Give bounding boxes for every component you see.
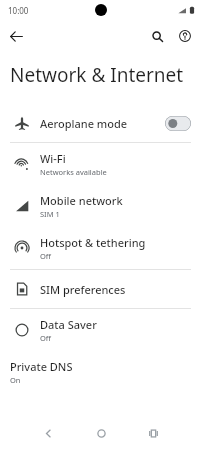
button[interactable]: Aeroplane mode toggle (165, 116, 191, 131)
button[interactable]: Wi-Fi (0, 143, 201, 185)
button[interactable]: Recent apps (127, 419, 179, 447)
button[interactable]: SIM preferences (0, 270, 201, 308)
button[interactable]: Private DNS (0, 351, 201, 393)
button[interactable]: Data Saver (0, 309, 201, 351)
button[interactable]: Home (75, 419, 127, 447)
staticText: Hotspot & tethering (40, 235, 146, 250)
staticText: SIM preferences (40, 282, 126, 297)
staticText: Network & Internet (10, 62, 184, 88)
button[interactable]: Search (146, 25, 168, 47)
staticText: Networks available (40, 167, 107, 177)
staticText: On (10, 375, 21, 385)
staticText: Aeroplane mode (40, 116, 128, 131)
staticText: 10:00 (8, 5, 29, 16)
button[interactable]: Mobile network (0, 185, 201, 227)
staticText: Data Saver (40, 317, 97, 332)
button[interactable]: Hotspot & tethering (0, 227, 201, 269)
button[interactable]: Back (5, 25, 27, 47)
staticText: Off (40, 251, 52, 261)
staticText: Private DNS (10, 359, 73, 374)
staticText: SIM 1 (40, 209, 60, 219)
staticText: Wi-Fi (40, 151, 66, 166)
button[interactable]: Back (22, 419, 75, 447)
staticText: Off (40, 333, 52, 343)
button[interactable]: Aeroplane mode (0, 104, 201, 142)
button[interactable]: Help (174, 25, 196, 47)
staticText: Mobile network (40, 193, 123, 208)
